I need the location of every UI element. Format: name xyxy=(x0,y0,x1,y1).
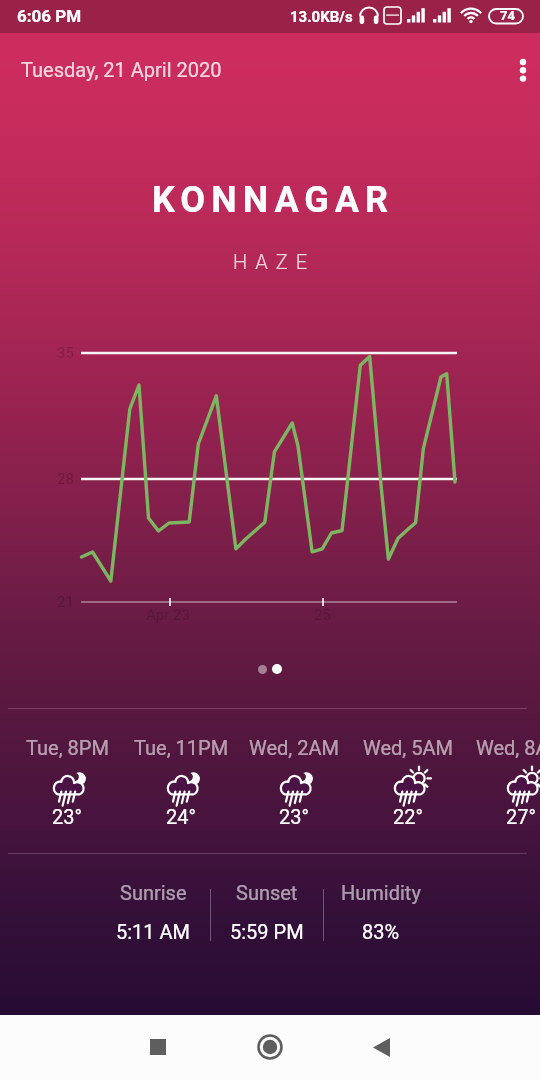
button[interactable]: Tue, 11PM xyxy=(125,736,237,828)
staticText: 35 xyxy=(57,344,74,362)
staticText: Humidity xyxy=(341,881,421,904)
staticText: 74 xyxy=(500,8,515,23)
staticText: 22° xyxy=(393,805,423,828)
staticText: 24° xyxy=(166,805,196,828)
staticText: 83% xyxy=(362,920,400,943)
button[interactable]: Sunrise xyxy=(98,881,208,943)
staticText: 25 xyxy=(314,606,331,624)
button[interactable]: Page 1 xyxy=(258,665,267,674)
staticText: Tuesday, 21 April 2020 xyxy=(21,58,222,81)
staticText: Tue, 11PM xyxy=(134,736,229,759)
button[interactable]: Tue, 8PM xyxy=(11,736,123,828)
button[interactable]: Wed, 5AM xyxy=(352,736,464,828)
button[interactable]: More options xyxy=(507,45,539,77)
staticText: Sunset xyxy=(236,881,298,904)
button[interactable]: Back xyxy=(352,1025,412,1070)
staticText: 5:59 PM xyxy=(230,920,304,943)
staticText: Wed, 8AM xyxy=(476,736,540,759)
staticText: 23° xyxy=(279,805,309,828)
staticText: 28 xyxy=(57,470,74,488)
button[interactable]: Home xyxy=(240,1025,300,1070)
button[interactable]: Page 2 xyxy=(272,664,282,674)
button[interactable]: Wed, 8AM xyxy=(465,736,540,828)
staticText: 6:06 PM xyxy=(17,6,82,26)
staticText: Apr 23 xyxy=(146,606,190,624)
staticText: 21 xyxy=(57,593,74,611)
staticText: HAZE xyxy=(4,250,540,273)
staticText: 13.0KB/s xyxy=(290,8,353,26)
button[interactable]: Wed, 2AM xyxy=(238,736,350,828)
button[interactable]: Recent apps xyxy=(128,1025,188,1070)
staticText: Wed, 5AM xyxy=(363,736,453,759)
button[interactable]: Humidity xyxy=(326,881,436,943)
button[interactable]: Sunset xyxy=(212,881,322,943)
staticText: Tue, 8PM xyxy=(26,736,109,759)
staticText: KONNAGAR xyxy=(3,179,540,221)
staticText: 5:11 AM xyxy=(116,920,191,943)
staticText: 23° xyxy=(52,805,82,828)
staticText: Sunrise xyxy=(120,881,187,904)
staticText: Wed, 2AM xyxy=(249,736,339,759)
staticText: 27° xyxy=(506,805,536,828)
